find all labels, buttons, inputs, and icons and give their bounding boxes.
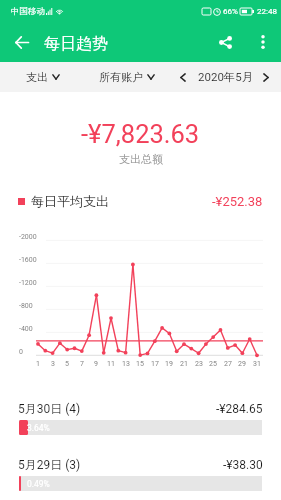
- staticText: 5: [65, 360, 69, 368]
- staticText: -800: [19, 302, 33, 310]
- staticText: 5月30日 (4): [18, 401, 81, 416]
- staticText: 1: [36, 360, 40, 368]
- staticText: -2000: [19, 233, 37, 241]
- staticText: -¥284.65: [216, 402, 263, 416]
- button[interactable]: Previous month: [171, 65, 195, 89]
- staticText: 每日平均支出: [31, 193, 109, 209]
- button[interactable]: 支出: [26, 70, 60, 84]
- staticText: 支出: [26, 70, 48, 84]
- staticText: 中国移动: [11, 6, 45, 17]
- button[interactable]: Next month: [254, 65, 278, 89]
- button[interactable]: More options: [245, 24, 281, 60]
- staticText: 0.49%: [27, 479, 50, 489]
- staticText: 13: [122, 360, 130, 368]
- staticText: 15: [136, 360, 144, 368]
- staticText: 22:48: [257, 7, 277, 16]
- button[interactable]: Share: [205, 22, 245, 62]
- staticText: 19: [165, 360, 173, 368]
- staticText: 3: [51, 360, 55, 368]
- button[interactable]: 5月30日 (4): [0, 400, 281, 440]
- staticText: 2020年5月: [198, 70, 254, 84]
- staticText: 所有账户: [99, 70, 143, 84]
- staticText: 27: [224, 360, 232, 368]
- staticText: 17: [151, 360, 159, 368]
- staticText: 66%: [223, 7, 238, 16]
- staticText: 11: [107, 360, 115, 368]
- button[interactable]: 5月29日 (3): [0, 456, 281, 496]
- staticText: 29: [238, 360, 246, 368]
- staticText: 21: [180, 360, 188, 368]
- staticText: -¥7,823.63: [81, 119, 200, 149]
- staticText: -¥252.38: [212, 194, 263, 209]
- staticText: 支出总额: [119, 152, 163, 166]
- button[interactable]: Back: [0, 22, 44, 62]
- staticText: -1200: [19, 279, 37, 287]
- staticText: 31: [253, 360, 261, 368]
- staticText: 23: [195, 360, 203, 368]
- staticText: -1600: [19, 256, 37, 264]
- staticText: 每日趋势: [44, 34, 108, 54]
- staticText: 5月29日 (3): [18, 457, 81, 472]
- staticText: 0: [19, 348, 23, 356]
- staticText: 9: [94, 360, 98, 368]
- button[interactable]: 所有账户: [99, 70, 155, 84]
- staticText: 25: [209, 360, 217, 368]
- staticText: 7: [80, 360, 84, 368]
- staticText: -400: [19, 325, 33, 333]
- staticText: 3.64%: [27, 423, 50, 433]
- staticText: -¥38.30: [223, 458, 263, 472]
